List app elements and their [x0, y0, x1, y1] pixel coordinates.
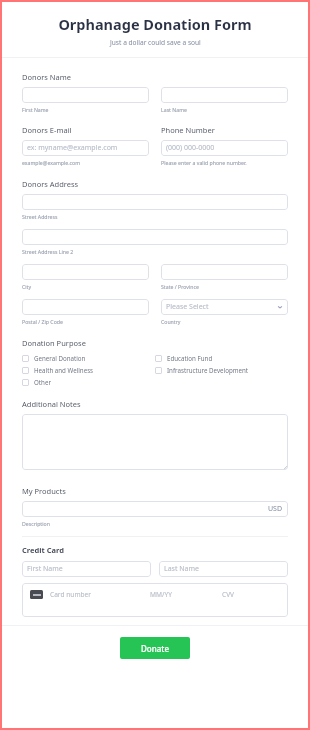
staticText: Postal / Zip Code — [22, 318, 63, 325]
staticText: Other — [34, 378, 51, 386]
staticText: Donation Purpose — [22, 338, 86, 348]
staticText: Description — [22, 520, 50, 527]
staticText: First Name — [22, 106, 49, 113]
staticText: Donors Address — [22, 179, 79, 189]
button[interactable] — [161, 87, 288, 103]
button[interactable] — [22, 194, 288, 210]
staticText: General Donation — [34, 354, 86, 362]
staticText: Street Address Line 2 — [22, 248, 74, 255]
staticText: Donors Name — [22, 72, 71, 82]
button[interactable] — [22, 299, 149, 315]
button[interactable]: Education Fund — [155, 352, 213, 364]
button[interactable]: Other — [22, 376, 51, 388]
button[interactable] — [161, 264, 288, 280]
staticText: example@example.com — [22, 159, 81, 166]
staticText: Education Fund — [167, 354, 213, 362]
staticText: Street Address — [22, 213, 58, 220]
button[interactable]: First Name — [22, 561, 151, 577]
staticText: Last Name — [164, 564, 200, 574]
button[interactable] — [22, 264, 149, 280]
button[interactable]: Infrastructure Development — [155, 364, 249, 376]
button[interactable]: Card — [22, 583, 288, 617]
staticText: Last Name — [161, 106, 187, 113]
staticText: Card number — [50, 590, 92, 599]
button[interactable]: Health and Wellness — [22, 364, 94, 376]
other: Card — [30, 590, 43, 599]
button[interactable] — [22, 87, 149, 103]
button[interactable]: USD — [22, 501, 288, 517]
button[interactable]: Donate — [120, 637, 190, 659]
staticText: First Name — [27, 564, 63, 574]
staticText: Infrastructure Development — [167, 366, 249, 374]
staticText: Please enter a valid phone number. — [161, 159, 247, 166]
staticText: Country — [161, 318, 181, 325]
staticText: USD — [268, 504, 283, 514]
staticText: MM/YY — [150, 590, 172, 599]
staticText: Credit Card — [22, 545, 64, 555]
staticText: My Products — [22, 486, 66, 496]
staticText: Please Select — [166, 302, 209, 312]
staticText: Phone Number — [161, 125, 215, 135]
staticText: Health and Wellness — [34, 366, 94, 374]
staticText: Just a dollar could save a soul — [110, 38, 201, 47]
button[interactable]: ex: myname@example.com — [22, 140, 149, 156]
staticText: (000) 000-0000 — [166, 143, 215, 153]
staticText: Orphanage Donation Form — [58, 14, 252, 34]
button[interactable]: General Donation — [22, 352, 86, 364]
staticText: Donors E-mail — [22, 125, 72, 135]
staticText: ex: myname@example.com — [27, 143, 118, 153]
staticText: Donate — [141, 643, 169, 654]
staticText: City — [22, 283, 32, 290]
staticText: State / Province — [161, 283, 199, 290]
button[interactable] — [22, 414, 288, 470]
staticText: CVV — [222, 590, 235, 599]
button[interactable] — [22, 229, 288, 245]
button[interactable]: (000) 000-0000 — [161, 140, 288, 156]
staticText: Additional Notes — [22, 399, 81, 409]
button[interactable]: Select country — [161, 299, 288, 315]
button[interactable]: Last Name — [159, 561, 288, 577]
